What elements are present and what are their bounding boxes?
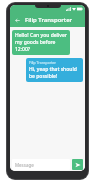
staticText: Hi, yeap that should be possible! bbox=[29, 66, 80, 80]
button[interactable]: Back bbox=[13, 16, 22, 25]
button[interactable]: Send bbox=[72, 159, 83, 170]
staticText: Filip Transporter bbox=[29, 60, 56, 65]
staticText: Filip Transporter bbox=[25, 16, 73, 24]
button[interactable]: Hello! Can you deliver my goods before 1… bbox=[12, 30, 70, 55]
button[interactable]: Filip Transporter bbox=[26, 58, 83, 82]
staticText: Message bbox=[15, 162, 34, 168]
button[interactable]: Message bbox=[12, 159, 70, 170]
staticText: Hello! Can you deliver my goods before 1… bbox=[15, 32, 67, 53]
